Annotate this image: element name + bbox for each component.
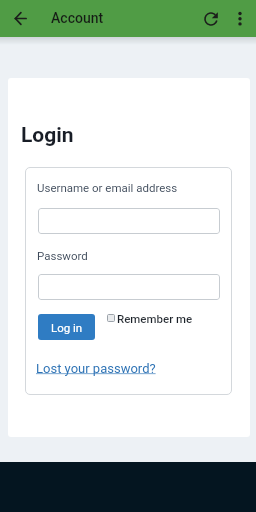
button[interactable]	[38, 274, 220, 300]
staticText: Username or email address	[37, 181, 178, 194]
button[interactable]: Lost your password?	[36, 361, 156, 376]
button[interactable]	[6, 4, 35, 33]
staticText: Log in	[51, 321, 83, 334]
button[interactable]	[196, 4, 225, 33]
button[interactable]: Log in	[38, 314, 95, 340]
button[interactable]	[38, 208, 220, 234]
staticText: Remember me	[117, 312, 193, 325]
staticText: Account	[51, 10, 104, 26]
staticText: Password	[37, 249, 88, 262]
staticText: Login	[21, 123, 74, 148]
button[interactable]	[228, 4, 252, 33]
button[interactable]: Remember me	[107, 314, 222, 330]
